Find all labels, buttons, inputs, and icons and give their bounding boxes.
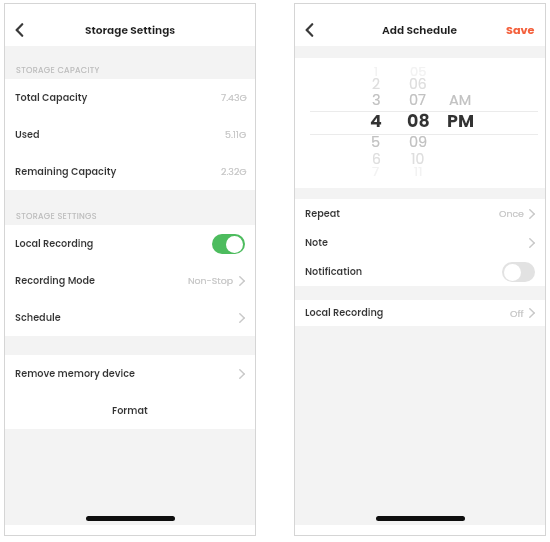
staticText: 07 (409, 90, 427, 110)
staticText: 1 (374, 62, 379, 80)
button[interactable]: Back (4, 16, 32, 44)
staticText: Once (499, 207, 524, 220)
button[interactable]: Repeat (295, 199, 545, 228)
staticText: 10 (411, 149, 425, 169)
staticText: 7.43G (221, 91, 247, 104)
staticText: Total Capacity (15, 91, 88, 105)
button[interactable]: Notification (295, 257, 545, 286)
staticText: 2.32G (221, 165, 247, 178)
staticText: 06 (409, 74, 427, 94)
button[interactable]: Back (294, 16, 322, 44)
staticText: 6 (372, 149, 381, 169)
staticText: Note (305, 236, 329, 250)
staticText: 08 (407, 109, 430, 134)
staticText: Format (112, 404, 148, 418)
button[interactable]: Local Recording (5, 225, 255, 262)
staticText: 11 (414, 162, 423, 180)
staticText: Remove memory device (15, 367, 135, 381)
button[interactable]: Toggle off (502, 262, 535, 282)
staticText: Used (15, 128, 40, 142)
button[interactable]: Remaining Capacity (5, 153, 255, 190)
staticText: STORAGE SETTINGS (16, 210, 97, 221)
staticText: 09 (409, 132, 428, 152)
staticText: STORAGE CAPACITY (16, 64, 100, 75)
staticText: PM (447, 109, 474, 134)
button[interactable]: Note (295, 228, 545, 257)
button[interactable]: Recording Mode (5, 262, 255, 299)
staticText: Repeat (305, 207, 341, 221)
button[interactable]: Format (5, 392, 255, 429)
staticText: 4 (370, 109, 382, 134)
staticText: Schedule (15, 311, 61, 325)
staticText: Storage Settings (85, 23, 176, 38)
button[interactable]: Remove memory device (5, 355, 255, 392)
staticText: Remaining Capacity (15, 165, 117, 179)
staticText: Local Recording (15, 237, 94, 251)
button[interactable]: Schedule (5, 299, 255, 336)
staticText: 5 (371, 132, 381, 152)
staticText: Save (506, 22, 535, 38)
staticText: Add Schedule (382, 23, 458, 38)
button[interactable]: Used (5, 116, 255, 153)
button[interactable]: Total Capacity (5, 79, 255, 116)
staticText: Notification (305, 265, 363, 279)
staticText: Non-Stop (188, 274, 234, 287)
button[interactable]: Toggle on (212, 234, 245, 254)
staticText: 05 (410, 62, 427, 80)
staticText: 2 (372, 74, 381, 94)
staticText: Local Recording (305, 306, 384, 320)
staticText: Off (510, 307, 524, 320)
button[interactable]: Save (496, 17, 545, 43)
staticText: Recording Mode (15, 274, 96, 288)
staticText: AM (449, 90, 472, 110)
staticText: 3 (372, 90, 381, 110)
staticText: 7 (372, 162, 380, 180)
staticText: 5.11G (225, 128, 247, 141)
button[interactable]: Local Recording (295, 300, 545, 326)
